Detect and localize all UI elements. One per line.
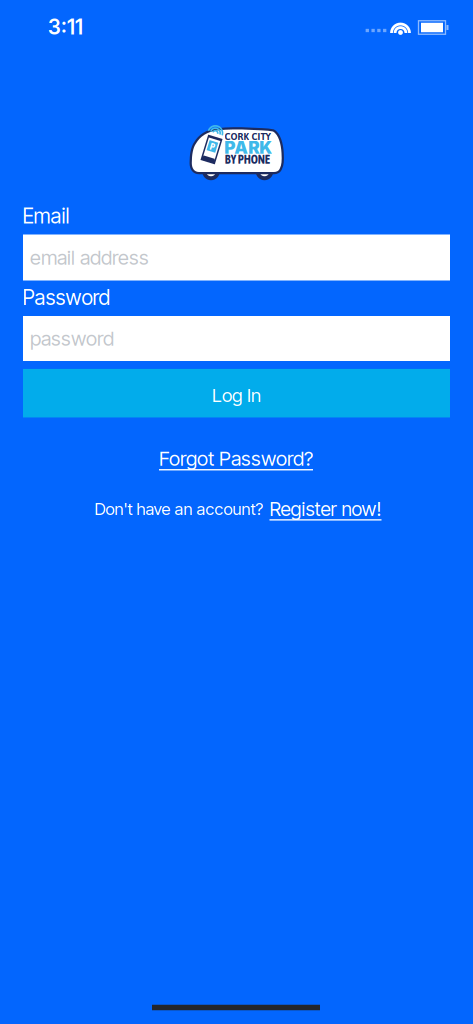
staticText: BY PHONE bbox=[225, 152, 270, 166]
button[interactable]: Register now! bbox=[269, 498, 381, 520]
button[interactable]: Forgot Password? bbox=[159, 447, 313, 470]
staticText: Password bbox=[22, 285, 110, 310]
staticText: Email bbox=[22, 204, 69, 228]
staticText: CORK CITY bbox=[224, 131, 270, 142]
staticText: PARK bbox=[224, 137, 272, 158]
staticText: 3:11 bbox=[48, 15, 83, 39]
staticText: password bbox=[30, 327, 114, 350]
staticText: Log In bbox=[212, 384, 261, 406]
staticText: P bbox=[209, 141, 214, 152]
staticText: Don't have an account? bbox=[94, 499, 263, 519]
staticText: email address bbox=[30, 246, 149, 269]
staticText: Forgot Password? bbox=[159, 447, 313, 470]
staticText: Register now! bbox=[269, 498, 381, 520]
button[interactable]: Log In bbox=[23, 369, 450, 417]
